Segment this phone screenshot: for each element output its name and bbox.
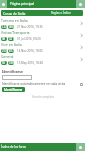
other: Open forum — [79, 33, 84, 38]
staticText: Reglas e Índice — [51, 11, 71, 15]
staticText: Página principal — [10, 2, 35, 6]
other: Open forum — [79, 21, 84, 26]
staticText: 98 — [2, 37, 6, 41]
staticText: 55 — [2, 61, 6, 65]
staticText: 14 Nov 2016, 10:05 — [17, 49, 43, 53]
staticText: Turismo en Italia — [1, 18, 28, 23]
staticText: Vivir en Italia — [1, 42, 22, 47]
staticText: Visitas/Transporte — [1, 30, 30, 35]
staticText: 123 — [2, 25, 7, 29]
button[interactable]: Vivir en Italia — [0, 41, 85, 53]
other: Open forum — [79, 57, 84, 62]
staticText: Identificarse — [4, 88, 23, 92]
button[interactable]: Go to top — [76, 143, 85, 151]
button[interactable] — [2, 75, 32, 80]
staticText: Identificarse automáticamente en cada vi… — [2, 82, 66, 86]
button[interactable]: Turismo en Italia — [0, 17, 85, 29]
staticText: 210 — [2, 49, 7, 53]
other: Open forum — [79, 45, 84, 50]
staticText: Índice de los foros — [1, 145, 26, 149]
staticText: 877 — [9, 49, 14, 53]
button[interactable]: Menu — [0, 0, 7, 8]
staticText: Cosas de Italia — [3, 11, 26, 15]
button[interactable]: Visitas/Transporte — [0, 29, 85, 41]
staticText: 01 Jul 2016, 09:20 — [17, 37, 41, 41]
button[interactable]: Search — [76, 0, 85, 8]
button[interactable]: Identificarse automáticamente en cada vi… — [2, 82, 83, 86]
staticText: Identificarse — [2, 69, 23, 73]
staticText: General — [1, 54, 14, 59]
staticText: 321 — [9, 37, 14, 41]
staticText: 21 Nov 2016, 19:35 — [17, 25, 43, 29]
staticText: 188 — [9, 61, 14, 65]
button[interactable]: General — [0, 53, 85, 65]
button[interactable]: Identificarse — [2, 87, 25, 92]
button[interactable]: Cosas de Italia — [1, 10, 83, 16]
staticText: 456 — [9, 25, 14, 29]
button[interactable]: Versión completa — [32, 95, 54, 99]
staticText: 13 May 2016, 18:40 — [17, 61, 44, 65]
